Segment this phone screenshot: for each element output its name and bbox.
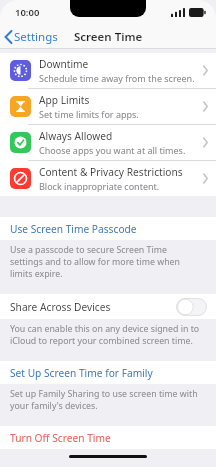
staticText: Set time limits for apps. xyxy=(39,108,139,120)
button[interactable]: Content & Privacy Restrictions xyxy=(0,161,216,196)
button[interactable]: Always Allowed xyxy=(0,125,216,161)
staticText: Set up Family Sharing to use screen time… xyxy=(10,388,202,412)
staticText: App Limits xyxy=(39,93,90,107)
staticText: Schedule time away from the screen. xyxy=(39,72,195,84)
staticText: 10:00 xyxy=(15,6,40,19)
staticText: Block inappropriate content. xyxy=(39,180,160,192)
staticText: You can enable this on any device signed… xyxy=(10,323,202,347)
button[interactable]: Use Screen Time Passcode xyxy=(0,217,216,240)
button[interactable]: Share Across Devices xyxy=(0,294,216,319)
button[interactable]: Share Across Devices toggle, off xyxy=(176,298,207,316)
staticText: Choose apps you want at all times. xyxy=(39,144,186,156)
button[interactable]: App Limits xyxy=(0,89,216,125)
staticText: Screen Time xyxy=(74,29,143,45)
staticText: Downtime xyxy=(39,57,89,71)
staticText: Use a passcode to secure Screen Time set… xyxy=(10,244,202,280)
button[interactable]: Set Up Screen Time for Family xyxy=(0,361,216,384)
staticText: Turn Off Screen Time xyxy=(10,431,111,445)
staticText: Set Up Screen Time for Family xyxy=(10,366,153,380)
button[interactable]: Downtime xyxy=(0,53,216,89)
staticText: Use Screen Time Passcode xyxy=(10,222,137,236)
staticText: Share Across Devices xyxy=(10,300,111,314)
button[interactable]: Settings xyxy=(0,26,64,48)
button[interactable]: Turn Off Screen Time xyxy=(0,426,216,449)
staticText: Content & Privacy Restrictions xyxy=(39,165,183,179)
staticText: Always Allowed xyxy=(39,129,113,143)
staticText: Settings xyxy=(14,29,58,45)
